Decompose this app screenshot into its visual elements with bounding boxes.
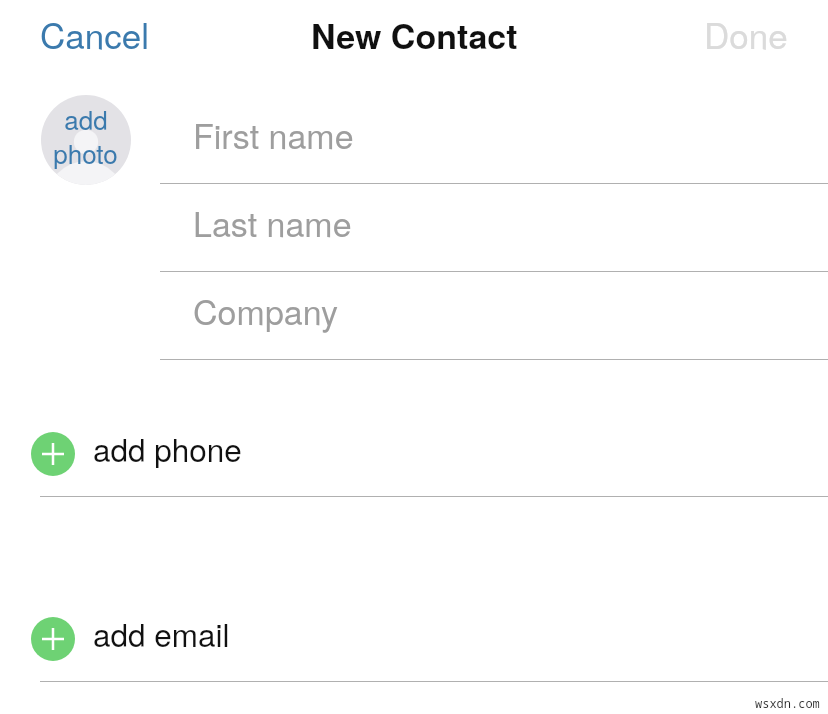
button[interactable]: add email <box>0 595 828 682</box>
button[interactable]: Cancel <box>26 0 163 69</box>
staticText: add <box>64 100 108 137</box>
staticText: add phone <box>93 426 242 471</box>
staticText: Last name <box>193 198 352 247</box>
button[interactable]: Last name <box>160 184 828 272</box>
button[interactable]: Company <box>160 272 828 360</box>
staticText: add email <box>93 611 230 656</box>
staticText: Cancel <box>40 9 149 59</box>
button[interactable]: First name <box>160 96 828 184</box>
button[interactable]: add phone <box>0 410 828 497</box>
staticText: New Contact <box>311 11 518 60</box>
staticText: wsxdn.com <box>755 695 820 711</box>
staticText: photo <box>53 134 118 171</box>
staticText: Company <box>193 286 338 335</box>
staticText: First name <box>193 110 354 159</box>
button[interactable]: Done <box>690 0 802 69</box>
button[interactable]: add photo <box>41 95 131 185</box>
staticText: Done <box>704 9 788 59</box>
